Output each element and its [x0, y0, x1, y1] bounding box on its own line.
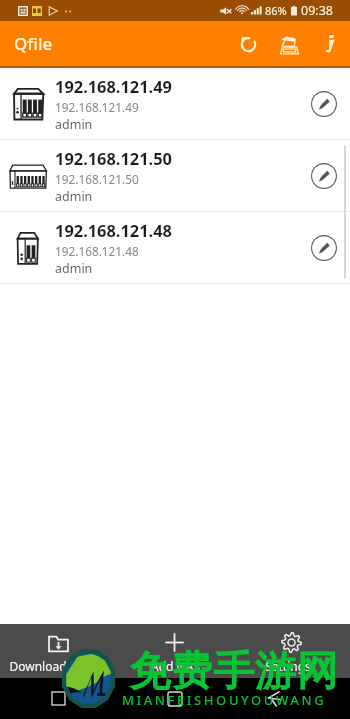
staticText: 09:38	[301, 2, 333, 19]
button[interactable]: Edit	[297, 68, 350, 139]
button[interactable]: Settings	[233, 624, 350, 678]
staticText: Settings	[265, 658, 311, 674]
staticText: 192.168.121.49	[55, 75, 172, 97]
button[interactable]: Transfer tasks	[272, 27, 306, 61]
staticText: 192.168.121.48	[55, 243, 139, 259]
staticText: Download	[9, 658, 67, 674]
button[interactable]: Edit	[297, 140, 350, 211]
staticText: 192.168.121.48	[55, 219, 172, 241]
button[interactable]: Download	[0, 624, 116, 678]
staticText: admin	[55, 116, 93, 133]
button[interactable]: 192.168.121.48	[0, 212, 350, 283]
staticText: 192.168.121.50	[55, 147, 172, 169]
button[interactable]: 192.168.121.50	[0, 140, 350, 211]
button[interactable]: Home	[116, 678, 233, 719]
button[interactable]: Edit	[297, 212, 350, 283]
button[interactable]: Add NAS	[116, 624, 233, 678]
button[interactable]: Recents	[0, 678, 116, 719]
staticText: 192.168.121.49	[55, 99, 139, 115]
button[interactable]: About	[313, 27, 347, 61]
staticText: admin	[55, 188, 93, 205]
button[interactable]: Back	[233, 678, 350, 719]
staticText: 免费手游网	[129, 646, 338, 698]
button[interactable]: 192.168.121.49	[0, 68, 350, 139]
staticText: admin	[55, 260, 93, 277]
staticText: Add NAS	[151, 658, 200, 674]
button[interactable]: Refresh	[231, 27, 265, 61]
staticText: MIANFEISHOUYOUWANG	[122, 691, 327, 709]
staticText: 192.168.121.50	[55, 171, 139, 187]
staticText: 86%	[265, 3, 287, 18]
staticText: Qfile	[14, 32, 53, 55]
